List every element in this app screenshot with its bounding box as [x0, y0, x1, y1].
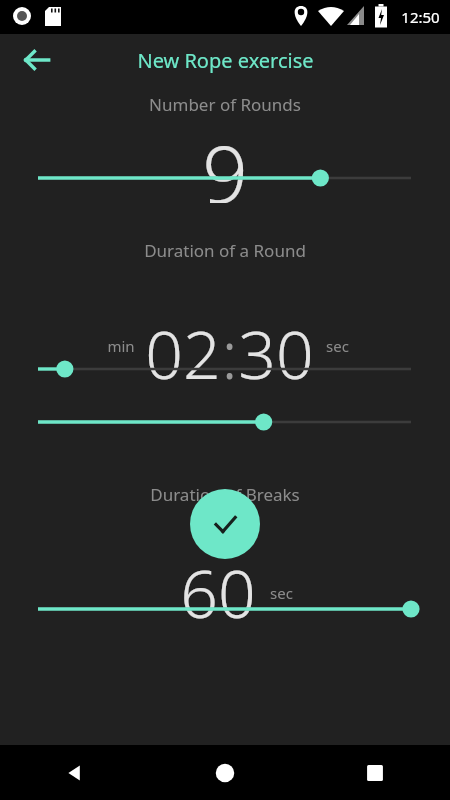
staticText: 12:50 — [401, 7, 440, 27]
staticText: 30 — [238, 308, 314, 384]
button[interactable]: Slider — [0, 406, 450, 438]
staticText: Duration of Breaks — [150, 483, 300, 506]
button[interactable]: Back — [13, 36, 61, 84]
button[interactable]: Slider — [0, 353, 450, 385]
button[interactable]: Slider — [0, 162, 450, 194]
button[interactable]: Back — [0, 745, 150, 800]
button[interactable]: Save exercise — [190, 489, 260, 559]
button[interactable]: Slider — [0, 593, 450, 625]
staticText: Duration of a Round — [144, 239, 306, 262]
staticText: 60 — [180, 547, 256, 623]
staticText: 02 — [145, 308, 221, 384]
button[interactable]: Home — [150, 745, 300, 800]
button[interactable]: Recents — [300, 745, 450, 800]
staticText: sec — [270, 583, 293, 603]
staticText: sec — [326, 336, 349, 356]
staticText: 9 — [202, 117, 248, 203]
staticText: min — [107, 336, 135, 356]
staticText: : — [221, 308, 238, 384]
staticText: New Rope exercise — [137, 47, 314, 74]
staticText: Number of Rounds — [149, 93, 301, 116]
